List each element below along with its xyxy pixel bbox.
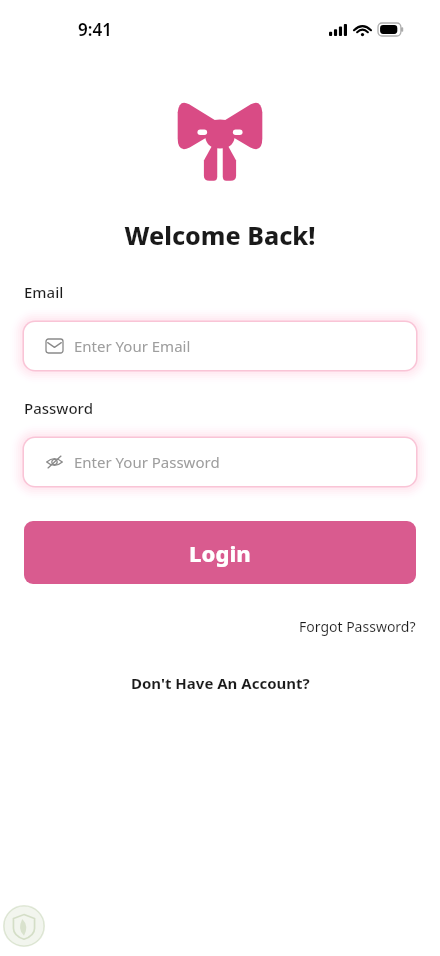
staticText: Email: [24, 282, 64, 302]
staticText: Login: [189, 538, 251, 568]
staticText: Welcome Back!: [0, 218, 440, 252]
button[interactable]: Don't Have An Account?: [125, 669, 316, 697]
staticText: 9:41: [78, 18, 112, 41]
button[interactable]: Show password: [24, 438, 416, 486]
button[interactable]: Login: [24, 521, 416, 584]
button[interactable]: Forgot Password?: [295, 614, 420, 639]
staticText: Don't Have An Account?: [131, 673, 310, 693]
other: Email: [46, 339, 63, 353]
other: Bow logo: [174, 98, 266, 182]
staticText: Enter Your Email: [74, 336, 191, 356]
staticText: Password: [24, 398, 93, 418]
staticText: Forgot Password?: [299, 617, 416, 636]
staticText: Enter Your Password: [74, 452, 220, 472]
other: Show password: [46, 455, 63, 469]
button[interactable]: Email: [24, 322, 416, 370]
